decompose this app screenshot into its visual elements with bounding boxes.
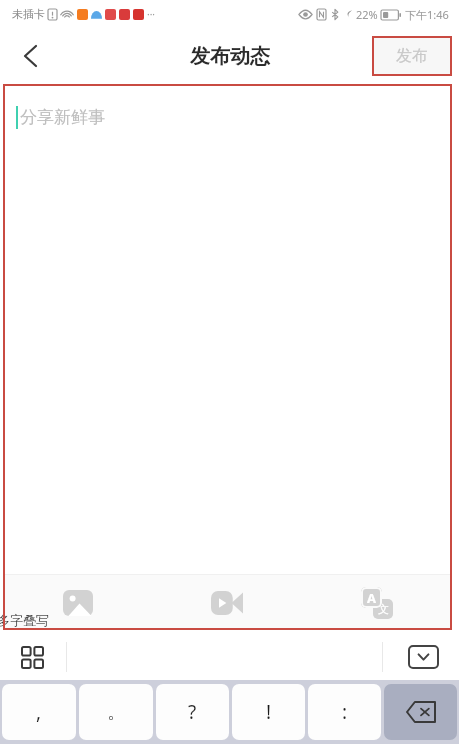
button[interactable]: 返回	[8, 34, 52, 78]
staticText: 发布动态	[190, 44, 270, 69]
staticText: 。	[107, 700, 126, 724]
staticText: :	[342, 699, 348, 725]
staticText: 文	[378, 602, 389, 616]
button[interactable]: ,	[2, 684, 76, 740]
staticText: ,	[36, 699, 42, 725]
staticText: 下午1:46	[405, 7, 449, 22]
staticText: 22%	[356, 7, 378, 22]
button[interactable]: 视频	[152, 575, 302, 630]
button[interactable]: :	[308, 684, 381, 740]
staticText: 多字叠写	[0, 612, 49, 628]
button[interactable]: 图片	[3, 575, 152, 630]
button[interactable]: 翻译	[302, 575, 452, 630]
button[interactable]: 发布	[372, 36, 452, 76]
staticText: !	[266, 699, 272, 725]
staticText: 分享新鲜事	[20, 107, 105, 128]
button[interactable]: 收起键盘	[403, 637, 443, 677]
button[interactable]: 键盘布局	[14, 639, 50, 675]
button[interactable]: ?	[156, 684, 229, 740]
button[interactable]: !	[232, 684, 305, 740]
button[interactable]: 删除	[384, 684, 457, 740]
staticText: ···	[147, 7, 156, 21]
staticText: 发布	[396, 46, 428, 66]
button[interactable]: 。	[79, 684, 153, 740]
staticText: 未插卡	[12, 7, 45, 21]
staticText: ?	[188, 699, 197, 725]
button[interactable]: 分享新鲜事	[3, 84, 452, 630]
staticText: A	[367, 589, 376, 607]
